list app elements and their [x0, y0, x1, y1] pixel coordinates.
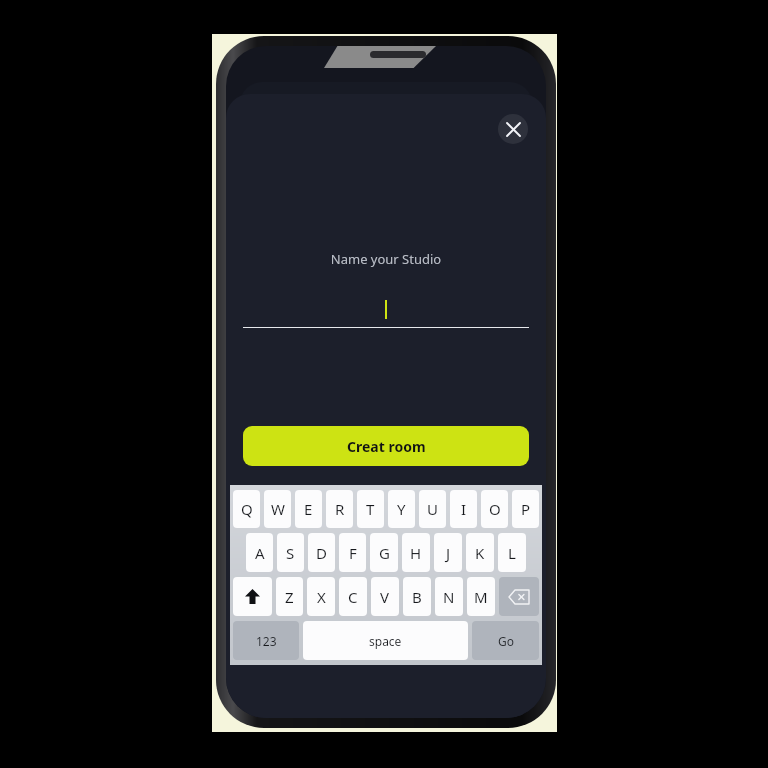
- staticText: Go: [498, 633, 514, 649]
- staticText: U: [427, 499, 438, 519]
- button[interactable]: Go: [472, 621, 539, 660]
- button[interactable]: W: [264, 490, 291, 528]
- button[interactable]: G: [370, 533, 398, 572]
- button[interactable]: P: [512, 490, 539, 528]
- button[interactable]: Q: [233, 490, 260, 528]
- button[interactable]: V: [371, 577, 399, 616]
- staticText: Q: [241, 499, 253, 519]
- staticText: Y: [397, 499, 406, 519]
- button[interactable]: J: [434, 533, 462, 572]
- button[interactable]: A: [246, 533, 273, 572]
- button[interactable]: E: [295, 490, 322, 528]
- button[interactable]: T: [357, 490, 384, 528]
- button[interactable]: I: [450, 490, 477, 528]
- button[interactable]: H: [402, 533, 430, 572]
- button[interactable]: K: [466, 533, 494, 572]
- staticText: I: [461, 499, 467, 519]
- staticText: L: [508, 543, 516, 563]
- staticText: K: [475, 543, 485, 563]
- staticText: N: [443, 587, 455, 607]
- button[interactable]: N: [435, 577, 463, 616]
- staticText: R: [335, 499, 345, 519]
- staticText: X: [317, 587, 326, 607]
- button[interactable]: X: [307, 577, 335, 616]
- button[interactable]: U: [419, 490, 446, 528]
- button[interactable]: [243, 298, 529, 328]
- staticText: O: [489, 499, 501, 519]
- staticText: G: [379, 543, 390, 563]
- staticText: C: [348, 587, 358, 607]
- button[interactable]: R: [326, 490, 353, 528]
- staticText: H: [410, 543, 422, 563]
- button[interactable]: Backspace: [499, 577, 539, 616]
- staticText: V: [380, 587, 390, 607]
- staticText: S: [286, 543, 295, 563]
- staticText: B: [412, 587, 422, 607]
- staticText: D: [316, 543, 327, 563]
- staticText: Z: [285, 587, 294, 607]
- staticText: T: [366, 499, 375, 519]
- staticText: M: [474, 587, 488, 607]
- button[interactable]: Y: [388, 490, 415, 528]
- button[interactable]: F: [339, 533, 366, 572]
- button[interactable]: O: [481, 490, 508, 528]
- button[interactable]: Z: [276, 577, 303, 616]
- staticText: E: [304, 499, 313, 519]
- button[interactable]: C: [339, 577, 367, 616]
- staticText: P: [521, 499, 531, 519]
- button[interactable]: S: [277, 533, 304, 572]
- button[interactable]: Home: [252, 716, 300, 718]
- button[interactable]: L: [498, 533, 526, 572]
- staticText: Creat room: [347, 437, 426, 456]
- button[interactable]: Profile: [472, 716, 520, 718]
- staticText: W: [271, 499, 285, 519]
- button[interactable]: 123: [233, 621, 299, 660]
- button[interactable]: B: [403, 577, 431, 616]
- button[interactable]: D: [308, 533, 335, 572]
- staticText: F: [349, 543, 357, 563]
- staticText: A: [255, 543, 265, 563]
- button[interactable]: M: [467, 577, 495, 616]
- button[interactable]: Shift: [233, 577, 272, 616]
- staticText: 123: [256, 633, 277, 649]
- button[interactable]: Close: [498, 114, 528, 144]
- staticText: J: [446, 543, 451, 563]
- staticText: Name your Studio: [226, 250, 546, 268]
- staticText: space: [369, 633, 402, 649]
- button[interactable]: space: [303, 621, 468, 660]
- button[interactable]: Creat room: [243, 426, 529, 466]
